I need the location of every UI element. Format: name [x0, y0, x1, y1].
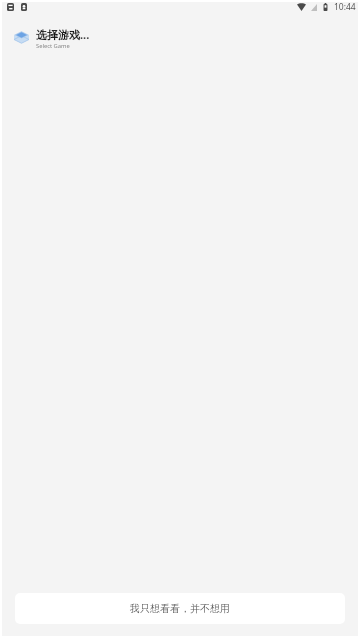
staticText: 我只想看看，并不想用: [130, 602, 230, 615]
staticText: 选择游戏...: [36, 27, 90, 42]
staticText: 10:44: [334, 1, 356, 13]
button[interactable]: 我只想看看，并不想用: [15, 593, 345, 624]
button[interactable]: Game icon: [2, 15, 358, 56]
staticText: Select Game: [36, 42, 70, 50]
other: Game icon: [14, 31, 29, 46]
